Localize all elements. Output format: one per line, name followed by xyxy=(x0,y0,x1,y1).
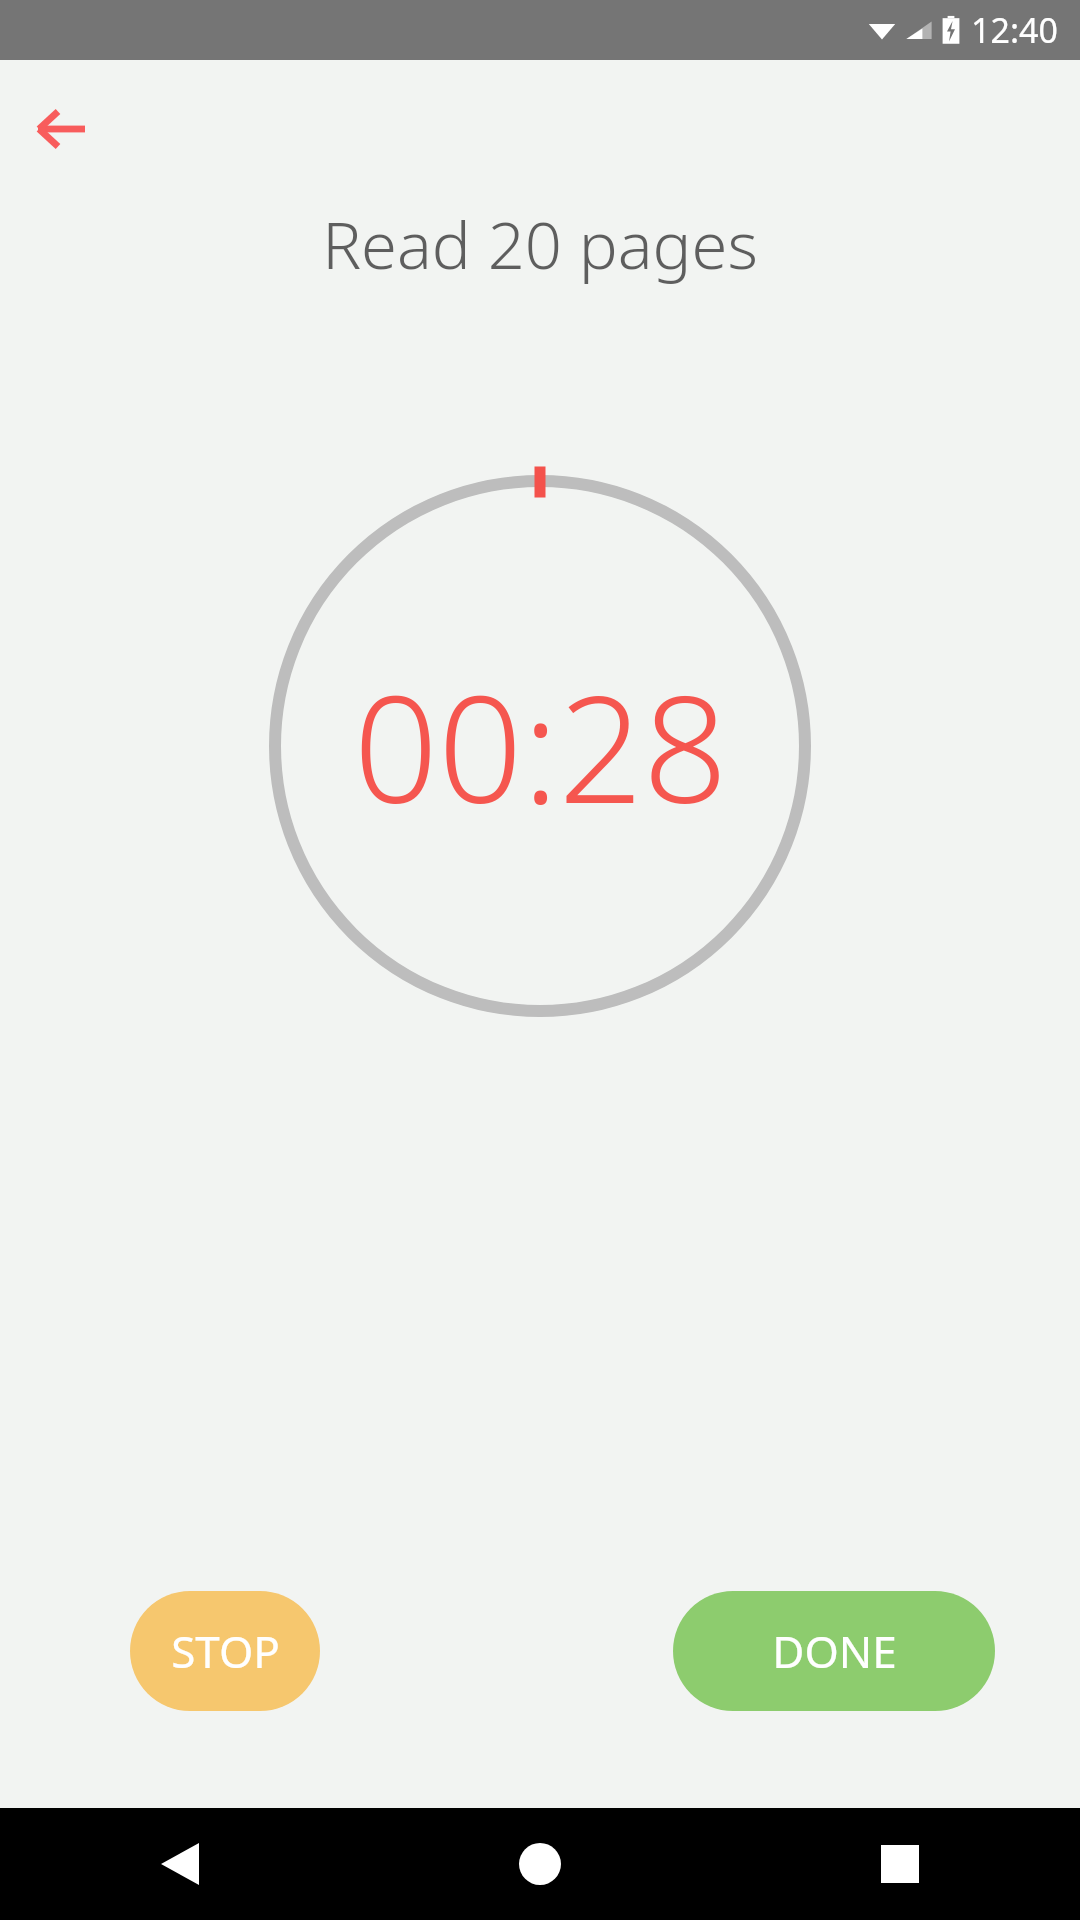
staticText: STOP xyxy=(171,1621,280,1681)
button[interactable]: DONE xyxy=(673,1591,995,1711)
button[interactable]: Back xyxy=(0,1808,360,1920)
button[interactable]: Home xyxy=(360,1808,720,1920)
button[interactable]: Back xyxy=(14,82,108,176)
button[interactable]: STOP xyxy=(130,1591,320,1711)
staticText: Read 20 pages xyxy=(322,200,758,289)
staticText: DONE xyxy=(772,1621,897,1681)
staticText: 12:40 xyxy=(971,7,1058,53)
button[interactable]: Recent apps xyxy=(720,1808,1080,1920)
staticText: 00:28 xyxy=(353,645,728,847)
